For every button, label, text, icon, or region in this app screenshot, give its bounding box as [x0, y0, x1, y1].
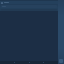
button[interactable]: Action	[59, 59, 63, 63]
